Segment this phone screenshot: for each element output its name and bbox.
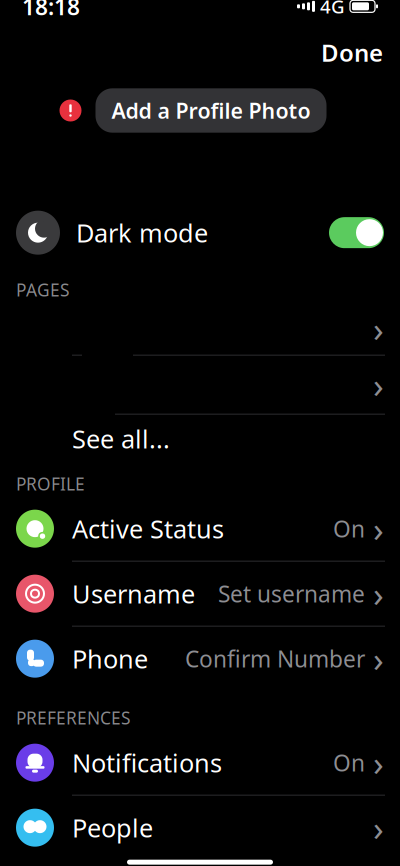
staticText: People xyxy=(72,811,153,844)
staticText: Notifications xyxy=(72,746,222,779)
staticText: Done xyxy=(321,36,383,68)
staticText: › xyxy=(373,362,384,408)
staticText: Dark mode xyxy=(76,216,208,249)
button[interactable]: Phone xyxy=(0,627,400,691)
staticText: On xyxy=(333,514,365,544)
staticText: PREFERENCES xyxy=(16,706,131,729)
staticText: Username xyxy=(72,577,195,610)
staticText: PAGES xyxy=(16,278,70,301)
button[interactable]: People xyxy=(0,796,400,860)
staticText: 18:18 xyxy=(22,0,80,21)
staticText: See all... xyxy=(72,422,170,455)
staticText: PROFILE xyxy=(16,472,85,495)
staticText: › xyxy=(373,636,384,682)
staticText: › xyxy=(373,805,384,851)
staticText: › xyxy=(373,571,384,617)
staticText: Add a Profile Photo xyxy=(111,96,310,125)
staticText: › xyxy=(373,506,384,552)
staticText: 4G xyxy=(320,0,345,19)
staticText: Active Status xyxy=(72,512,224,545)
button[interactable]: Username xyxy=(0,562,400,626)
staticText: On xyxy=(333,748,365,778)
staticText: Confirm Number xyxy=(185,644,365,674)
button[interactable]: Done xyxy=(313,30,391,74)
staticText: Set username xyxy=(218,579,365,609)
staticText: › xyxy=(373,306,384,352)
button[interactable]: Add a Profile Photo xyxy=(59,88,326,133)
staticText: › xyxy=(373,740,384,786)
button[interactable]: Active Status xyxy=(0,497,400,561)
staticText: Phone xyxy=(72,642,148,675)
button[interactable]: Dark mode xyxy=(0,203,400,263)
button[interactable]: See all... xyxy=(0,415,400,463)
button[interactable]: Notifications xyxy=(0,731,400,795)
